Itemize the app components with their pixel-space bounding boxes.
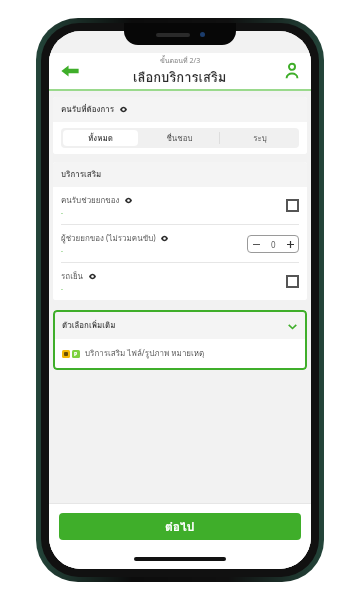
staticText: - — [61, 247, 63, 255]
button[interactable]: ชื่นชอบ — [140, 128, 219, 148]
staticText: ระบุ — [253, 132, 267, 145]
staticText: ขั้นตอนที่ 2/3 — [160, 55, 201, 66]
button[interactable]: คนรับช่วยยกของ — [53, 187, 307, 224]
button[interactable]: Profile — [279, 58, 305, 84]
staticText: รถเย็น — [61, 270, 84, 283]
button[interactable]: ระบุ — [220, 128, 299, 148]
staticText: บริการเสริม ไฟล์/รูปภาพ หมายเหตุ — [85, 347, 205, 360]
button[interactable]: Toggle คนรับช่วยยกของ — [286, 199, 299, 212]
button[interactable]: ตัวเลือกเพิ่มเติม — [55, 312, 305, 339]
staticText: เลือกบริการเสริม — [133, 67, 227, 88]
button[interactable]: Toggle รถเย็น — [286, 275, 299, 288]
staticText: P — [74, 351, 78, 358]
staticText: - — [61, 209, 63, 217]
button[interactable]: Increase — [282, 235, 299, 253]
staticText: คนรับที่ต้องการ — [61, 103, 115, 116]
staticText: ผู้ช่วยยกของ (ไม่รวมคนขับ) — [61, 232, 156, 245]
staticText: คนรับช่วยยกของ — [61, 194, 120, 207]
staticText: ชื่นชอบ — [166, 132, 193, 145]
button[interactable]: ต่อไป — [59, 513, 301, 540]
staticText: - — [61, 285, 63, 293]
staticText: ทั้งหมด — [88, 132, 113, 145]
button[interactable]: P — [55, 339, 305, 368]
button[interactable]: ทั้งหมด — [63, 130, 138, 146]
button[interactable]: ผู้ช่วยยกของ (ไม่รวมคนขับ) — [53, 225, 307, 262]
other: Expand — [286, 320, 298, 332]
staticText: 0 — [271, 239, 276, 250]
button[interactable]: Back — [55, 56, 85, 86]
button[interactable]: Decrease — [247, 235, 265, 253]
staticText: ต่อไป — [165, 517, 195, 536]
staticText: ตัวเลือกเพิ่มเติม — [62, 319, 286, 332]
button[interactable]: รถเย็น — [53, 263, 307, 300]
staticText: บริการเสริม — [61, 168, 102, 181]
